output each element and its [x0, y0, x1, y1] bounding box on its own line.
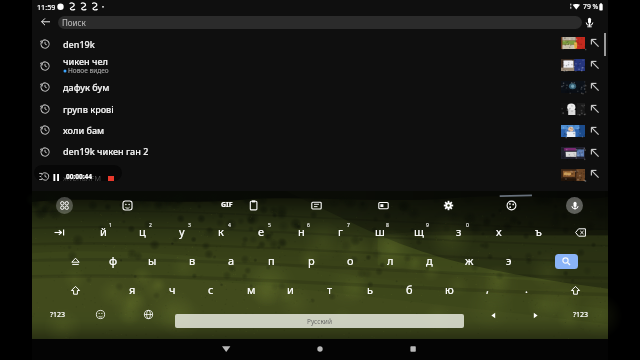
button[interactable]: Back: [215, 339, 237, 360]
staticText: б: [406, 282, 413, 297]
button[interactable]: Back: [37, 13, 55, 31]
staticText: журналFM: [63, 173, 101, 181]
button[interactable]: Voice input: [566, 197, 583, 214]
button[interactable]: Backspace: [569, 223, 591, 241]
button[interactable]: ч: [156, 277, 188, 301]
button[interactable]: р: [295, 248, 327, 272]
staticText: 1: [109, 222, 112, 229]
button[interactable]: ?123: [568, 307, 594, 323]
staticText: у: [179, 224, 185, 239]
button[interactable]: .: [510, 276, 542, 300]
button[interactable]: журналFM: [34, 165, 122, 181]
button[interactable]: ?123: [45, 307, 71, 323]
button[interactable]: ы: [136, 248, 168, 272]
button[interactable]: [32, 55, 552, 76]
button[interactable]: и: [274, 277, 306, 301]
button[interactable]: Change language: [137, 305, 159, 323]
button[interactable]: Text editing: [372, 196, 394, 214]
button[interactable]: п: [255, 248, 287, 272]
button[interactable]: в: [176, 248, 208, 272]
button[interactable]: Русский: [175, 314, 464, 328]
button[interactable]: ,: [471, 276, 503, 300]
button[interactable]: [32, 141, 552, 162]
button[interactable]: э: [493, 248, 525, 272]
button[interactable]: Themes: [305, 196, 327, 214]
button[interactable]: Clipboard: [242, 196, 264, 214]
button[interactable]: Move cursor right: [524, 306, 546, 324]
staticText: 11:59: [37, 2, 56, 12]
button[interactable]: с: [195, 277, 227, 301]
button[interactable]: [32, 119, 552, 140]
button[interactable]: Поиск: [58, 16, 582, 29]
staticText: холи бам: [63, 124, 105, 136]
button[interactable]: б: [393, 277, 425, 301]
button[interactable]: з: [443, 219, 475, 243]
button[interactable]: ю: [433, 277, 465, 301]
button[interactable]: Insert suggestion: [556, 121, 606, 141]
button[interactable]: Caps lock: [64, 252, 86, 270]
button[interactable]: Shift: [64, 281, 86, 299]
staticText: м: [247, 282, 256, 297]
staticText: я: [129, 282, 136, 297]
button[interactable]: н: [285, 219, 317, 243]
button[interactable]: ъ: [522, 219, 554, 243]
staticText: чикен чел: [63, 55, 108, 67]
button[interactable]: Move cursor left: [482, 306, 504, 324]
staticText: ш: [375, 224, 385, 239]
button[interactable]: Apps: [56, 197, 73, 214]
button[interactable]: я: [116, 277, 148, 301]
button[interactable]: Stickers: [116, 196, 138, 214]
button[interactable]: GIF: [216, 197, 238, 213]
button[interactable]: е: [245, 219, 277, 243]
button[interactable]: щ: [403, 219, 435, 243]
button[interactable]: ж: [453, 248, 485, 272]
button[interactable]: Settings: [437, 196, 459, 214]
staticText: 5: [268, 222, 271, 229]
button[interactable]: Insert suggestion: [556, 164, 606, 184]
button[interactable]: т: [314, 277, 346, 301]
button[interactable]: Emoji: [89, 305, 111, 323]
button[interactable]: Insert suggestion: [556, 143, 606, 163]
staticText: ж: [465, 253, 474, 268]
staticText: з: [456, 224, 462, 239]
button[interactable]: Insert suggestion: [556, 99, 606, 119]
button[interactable]: г: [324, 219, 356, 243]
button[interactable]: ф: [97, 248, 129, 272]
button[interactable]: Home: [309, 339, 331, 360]
staticText: ?123: [50, 310, 66, 320]
staticText: й: [100, 224, 107, 239]
button[interactable]: ш: [364, 219, 396, 243]
button[interactable]: о: [334, 248, 366, 272]
button[interactable]: Palette: [500, 196, 522, 214]
button[interactable]: й: [87, 219, 119, 243]
button[interactable]: [32, 34, 552, 55]
button[interactable]: Tab: [48, 223, 70, 241]
staticText: щ: [414, 224, 424, 239]
staticText: л: [387, 253, 394, 268]
staticText: о: [347, 253, 354, 268]
button[interactable]: д: [413, 248, 445, 272]
button[interactable]: Recent apps: [402, 339, 424, 360]
button[interactable]: Insert suggestion: [556, 55, 606, 75]
button[interactable]: ь: [354, 277, 386, 301]
staticText: дафук бум: [63, 81, 110, 93]
staticText: ъ: [535, 224, 542, 239]
button[interactable]: Search: [555, 254, 578, 269]
button[interactable]: а: [215, 248, 247, 272]
staticText: ц: [139, 224, 146, 239]
button[interactable]: м: [235, 277, 267, 301]
button[interactable]: х: [483, 219, 515, 243]
staticText: е: [258, 224, 265, 239]
staticText: 0: [466, 222, 469, 229]
staticText: Поиск: [62, 17, 86, 28]
button[interactable]: Shift: [564, 281, 586, 299]
button[interactable]: ц: [126, 219, 158, 243]
button[interactable]: [32, 98, 552, 119]
button[interactable]: к: [205, 219, 237, 243]
button[interactable]: Insert suggestion: [556, 33, 606, 53]
button[interactable]: л: [374, 248, 406, 272]
button[interactable]: у: [166, 219, 198, 243]
button[interactable]: Voice search: [580, 13, 599, 32]
button[interactable]: Insert suggestion: [556, 77, 606, 97]
button[interactable]: [32, 76, 552, 97]
